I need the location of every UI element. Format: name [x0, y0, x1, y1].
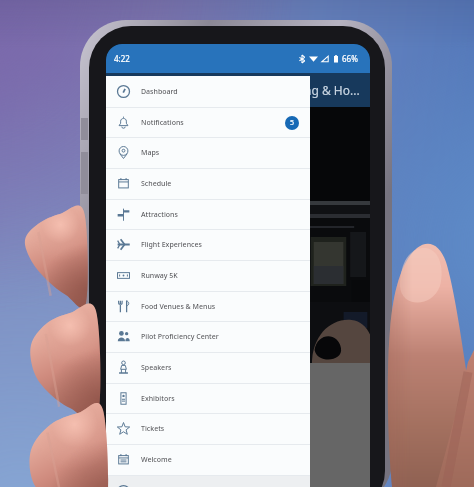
other: 5 unread notifications	[285, 116, 299, 130]
staticText: 66%	[342, 53, 358, 64]
button[interactable]: Flight Experiences	[106, 229, 310, 260]
staticText: ng & Ho...	[304, 82, 360, 98]
staticText: Maps	[141, 148, 160, 158]
staticText: Notifications	[141, 118, 184, 128]
button[interactable]: Schedule	[106, 168, 310, 199]
staticText: 4:22	[114, 53, 130, 64]
button[interactable]	[106, 476, 310, 487]
button[interactable]: Tickets	[106, 413, 310, 444]
button[interactable]: Speakers	[106, 352, 310, 383]
button[interactable]: Pilot Proficiency Center	[106, 321, 310, 352]
staticText: Dashboard	[141, 87, 178, 97]
button[interactable]: Maps	[106, 137, 310, 168]
staticText: Exhibitors	[141, 394, 175, 404]
button[interactable]: Dashboard	[106, 76, 310, 107]
staticText: Speakers	[141, 363, 172, 373]
button[interactable]: Attractions	[106, 199, 310, 230]
staticText: Tickets	[141, 424, 165, 434]
staticText: 5	[290, 118, 295, 128]
staticText: Schedule	[141, 179, 172, 189]
button[interactable]: Exhibitors	[106, 383, 310, 414]
button[interactable]: Welcome	[106, 444, 310, 475]
staticText: Welcome	[141, 455, 172, 465]
button[interactable]: Notifications	[106, 107, 310, 138]
staticText: Runway 5K	[141, 271, 178, 281]
button[interactable]: Food Venues & Menus	[106, 291, 310, 322]
staticText: Food Venues & Menus	[141, 302, 216, 312]
button[interactable]: Runway 5K	[106, 260, 310, 291]
staticText: Flight Experiences	[141, 240, 202, 250]
staticText: Pilot Proficiency Center	[141, 332, 219, 342]
staticText: Attractions	[141, 210, 178, 220]
